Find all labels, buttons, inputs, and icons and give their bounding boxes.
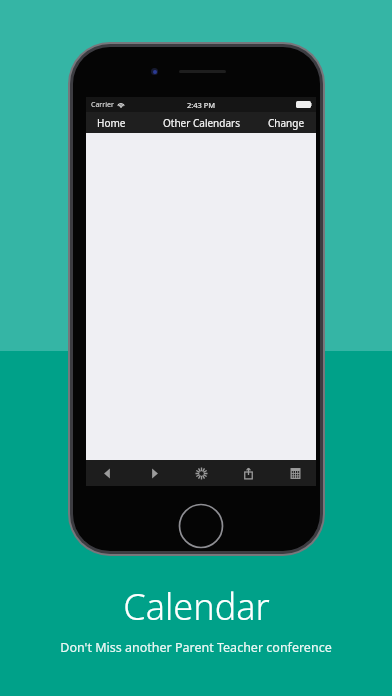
button[interactable]: Loading — [189, 461, 213, 485]
staticText: Calendar — [123, 582, 270, 631]
button[interactable]: Back — [95, 461, 119, 485]
button[interactable]: Calendar — [283, 461, 307, 485]
button[interactable]: Change — [264, 113, 309, 133]
button[interactable]: Share — [236, 461, 260, 485]
staticText: Don't Miss another Parent Teacher confer… — [60, 639, 332, 656]
button[interactable]: Home — [93, 113, 130, 133]
staticText: Change — [268, 116, 305, 130]
button[interactable]: Forward — [142, 461, 166, 485]
staticText: Home — [97, 116, 126, 130]
button[interactable]: Other Calendars — [159, 113, 244, 133]
staticText: Carrier — [91, 100, 114, 110]
staticText: 2:43 PM — [187, 100, 216, 110]
button[interactable]: Home — [178, 503, 224, 549]
staticText: Other Calendars — [163, 116, 240, 130]
